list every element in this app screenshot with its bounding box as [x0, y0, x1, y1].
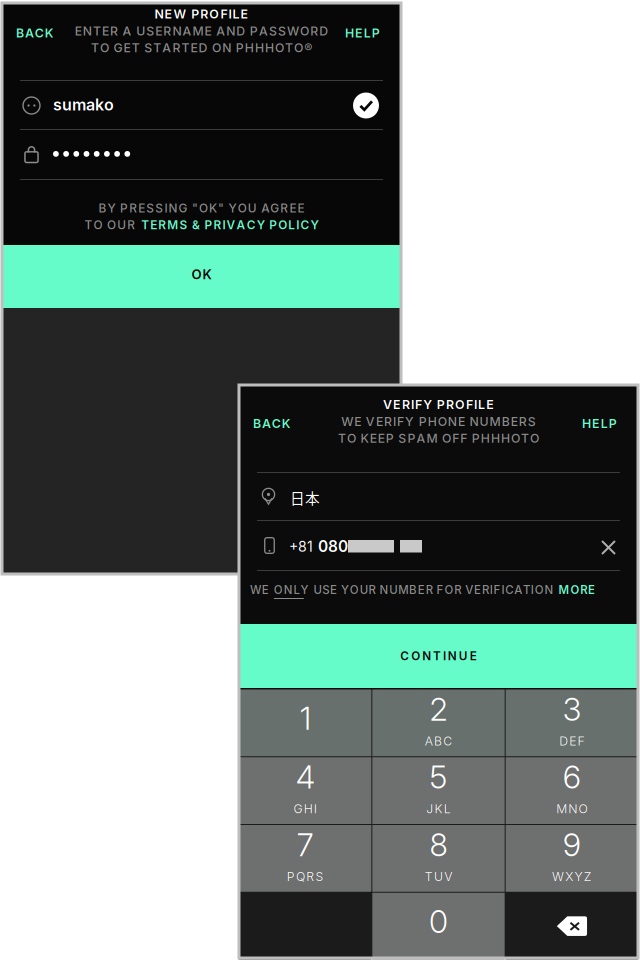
- staticText: V: [366, 414, 375, 429]
- button[interactable]: 5: [372, 757, 505, 824]
- staticText: N: [226, 23, 235, 38]
- staticText: K: [282, 416, 291, 431]
- staticText: A: [237, 218, 246, 232]
- staticText: L: [364, 25, 371, 40]
- staticText: Y: [108, 201, 116, 215]
- staticText: O: [278, 218, 287, 232]
- staticText: F: [460, 431, 467, 446]
- button[interactable]: 2: [372, 689, 505, 756]
- staticText: E: [470, 649, 477, 663]
- staticText: T: [523, 583, 530, 597]
- staticText: W: [341, 414, 353, 429]
- staticText: U: [434, 869, 443, 884]
- staticText: E: [592, 416, 600, 431]
- button[interactable]: 7: [239, 825, 371, 892]
- staticText: W: [250, 583, 261, 597]
- staticText: D: [319, 23, 328, 38]
- staticText: 2: [429, 690, 447, 728]
- staticText: T: [433, 649, 441, 663]
- staticText: G: [270, 201, 279, 215]
- button[interactable]: Delete: [506, 893, 638, 960]
- button[interactable]: H: [572, 407, 627, 440]
- button[interactable]: M: [558, 583, 595, 597]
- staticText: P: [120, 201, 128, 215]
- button[interactable]: O: [2, 245, 401, 308]
- staticText: O: [300, 23, 309, 38]
- staticText: N: [172, 23, 181, 38]
- staticText: M: [490, 414, 501, 429]
- button[interactable]: 4: [239, 757, 371, 824]
- button[interactable]: 3: [506, 689, 638, 756]
- staticText: X: [565, 869, 573, 884]
- button[interactable]: B: [243, 407, 301, 440]
- staticText: N: [469, 414, 478, 429]
- staticText: 7: [297, 826, 314, 864]
- staticText: H: [491, 431, 500, 446]
- button[interactable]: 0: [372, 893, 505, 960]
- button[interactable]: C: [239, 624, 638, 688]
- staticText: N: [83, 23, 92, 38]
- staticText: D: [559, 733, 568, 748]
- staticText: O: [411, 649, 420, 663]
- staticText: J: [426, 801, 433, 816]
- button[interactable]: 6: [506, 757, 638, 824]
- staticText: I: [474, 397, 477, 412]
- staticText: O: [294, 40, 303, 55]
- staticText: S: [315, 869, 323, 884]
- staticText: K: [209, 201, 217, 215]
- button[interactable]: T: [141, 218, 318, 232]
- staticText: H: [304, 801, 313, 816]
- button[interactable]: Clear phone number: [594, 533, 623, 562]
- staticText: O: [94, 218, 103, 232]
- staticText: S: [278, 23, 286, 38]
- staticText: I: [296, 218, 299, 232]
- staticText: C: [247, 218, 256, 232]
- staticText: I: [393, 414, 396, 429]
- staticText: S: [155, 201, 163, 215]
- staticText: E: [458, 414, 465, 429]
- staticText: A: [216, 23, 225, 38]
- staticText: P: [236, 40, 244, 55]
- staticText: E: [190, 40, 197, 55]
- staticText: R: [402, 397, 410, 412]
- staticText: O: [199, 201, 208, 215]
- staticText: B: [253, 416, 261, 431]
- staticText: F: [397, 414, 404, 429]
- staticText: G: [178, 201, 187, 215]
- staticText: L: [294, 583, 300, 597]
- button[interactable]: 1: [239, 689, 371, 756]
- staticText: E: [486, 397, 494, 412]
- staticText: E: [393, 397, 401, 412]
- staticText: O: [347, 431, 356, 446]
- staticText: F: [494, 583, 501, 597]
- staticText: A: [261, 201, 269, 215]
- staticText: C: [300, 218, 309, 232]
- staticText: E: [155, 23, 162, 38]
- button[interactable]: H: [335, 16, 390, 49]
- staticText: P: [191, 6, 199, 21]
- staticText: C: [400, 649, 409, 663]
- staticText: O: [274, 583, 283, 597]
- staticText: S: [146, 23, 154, 38]
- button[interactable]: 8: [372, 825, 505, 892]
- staticText: O: [444, 583, 453, 597]
- button[interactable]: 9: [506, 825, 638, 892]
- staticText: 日本: [290, 487, 320, 508]
- staticText: R: [127, 218, 135, 232]
- staticText: I: [228, 6, 231, 21]
- staticText: H: [501, 431, 510, 446]
- staticText: F: [437, 583, 444, 597]
- staticText: E: [588, 583, 595, 597]
- staticText: R: [446, 397, 454, 412]
- staticText: B: [502, 414, 510, 429]
- staticText: W: [552, 869, 564, 884]
- staticText: T: [153, 40, 161, 55]
- staticText: 3: [563, 690, 581, 728]
- staticText: E: [355, 25, 363, 40]
- staticText: P: [386, 431, 394, 446]
- button[interactable]: B: [6, 16, 64, 49]
- staticText: R: [110, 23, 118, 38]
- staticText: H: [481, 431, 490, 446]
- staticText: N: [448, 414, 457, 429]
- staticText: V: [465, 583, 473, 597]
